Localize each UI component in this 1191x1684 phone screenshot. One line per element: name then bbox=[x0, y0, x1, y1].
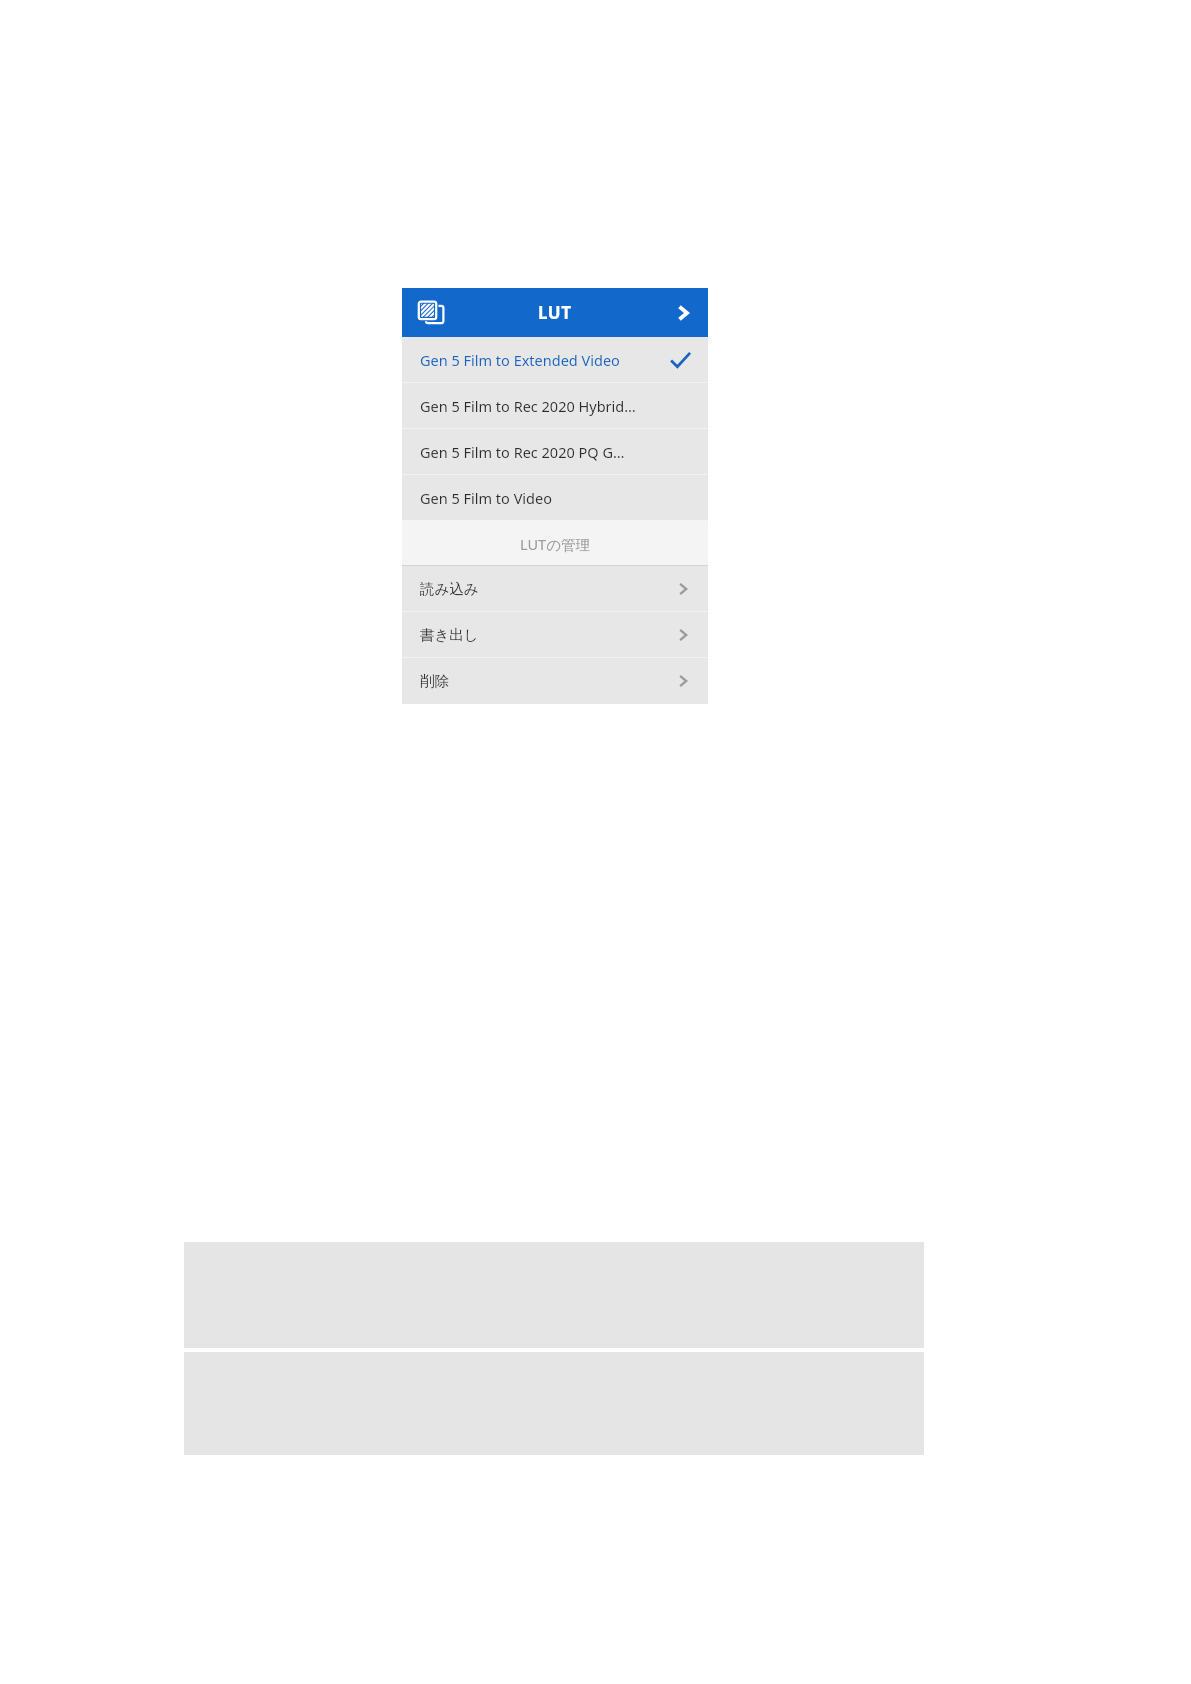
button[interactable]: 削除 bbox=[402, 658, 708, 704]
staticText: LUTの管理 bbox=[402, 534, 708, 554]
button[interactable]: More bbox=[672, 302, 694, 324]
button[interactable]: Gen 5 Film to Video bbox=[402, 475, 708, 521]
staticText: Gen 5 Film to Video bbox=[420, 488, 552, 508]
button[interactable]: 読み込み bbox=[402, 566, 708, 612]
staticText: Gen 5 Film to Extended Video bbox=[420, 350, 620, 370]
button[interactable]: 書き出し bbox=[402, 612, 708, 658]
staticText: LUT bbox=[538, 301, 572, 324]
staticText: Gen 5 Film to Rec 2020 Hybrid… bbox=[420, 396, 636, 416]
button[interactable]: Gen 5 Film to Extended Video bbox=[402, 337, 708, 383]
button[interactable]: Gen 5 Film to Rec 2020 Hybrid… bbox=[402, 383, 708, 429]
button[interactable]: Gen 5 Film to Rec 2020 PQ G… bbox=[402, 429, 708, 475]
staticText: Gen 5 Film to Rec 2020 PQ G… bbox=[420, 442, 625, 462]
staticText: 書き出し bbox=[420, 626, 479, 644]
staticText: 読み込み bbox=[420, 580, 479, 598]
staticText: 削除 bbox=[420, 672, 449, 690]
button[interactable]: LUT layers bbox=[402, 288, 708, 337]
button[interactable]: LUT layers bbox=[417, 298, 447, 328]
